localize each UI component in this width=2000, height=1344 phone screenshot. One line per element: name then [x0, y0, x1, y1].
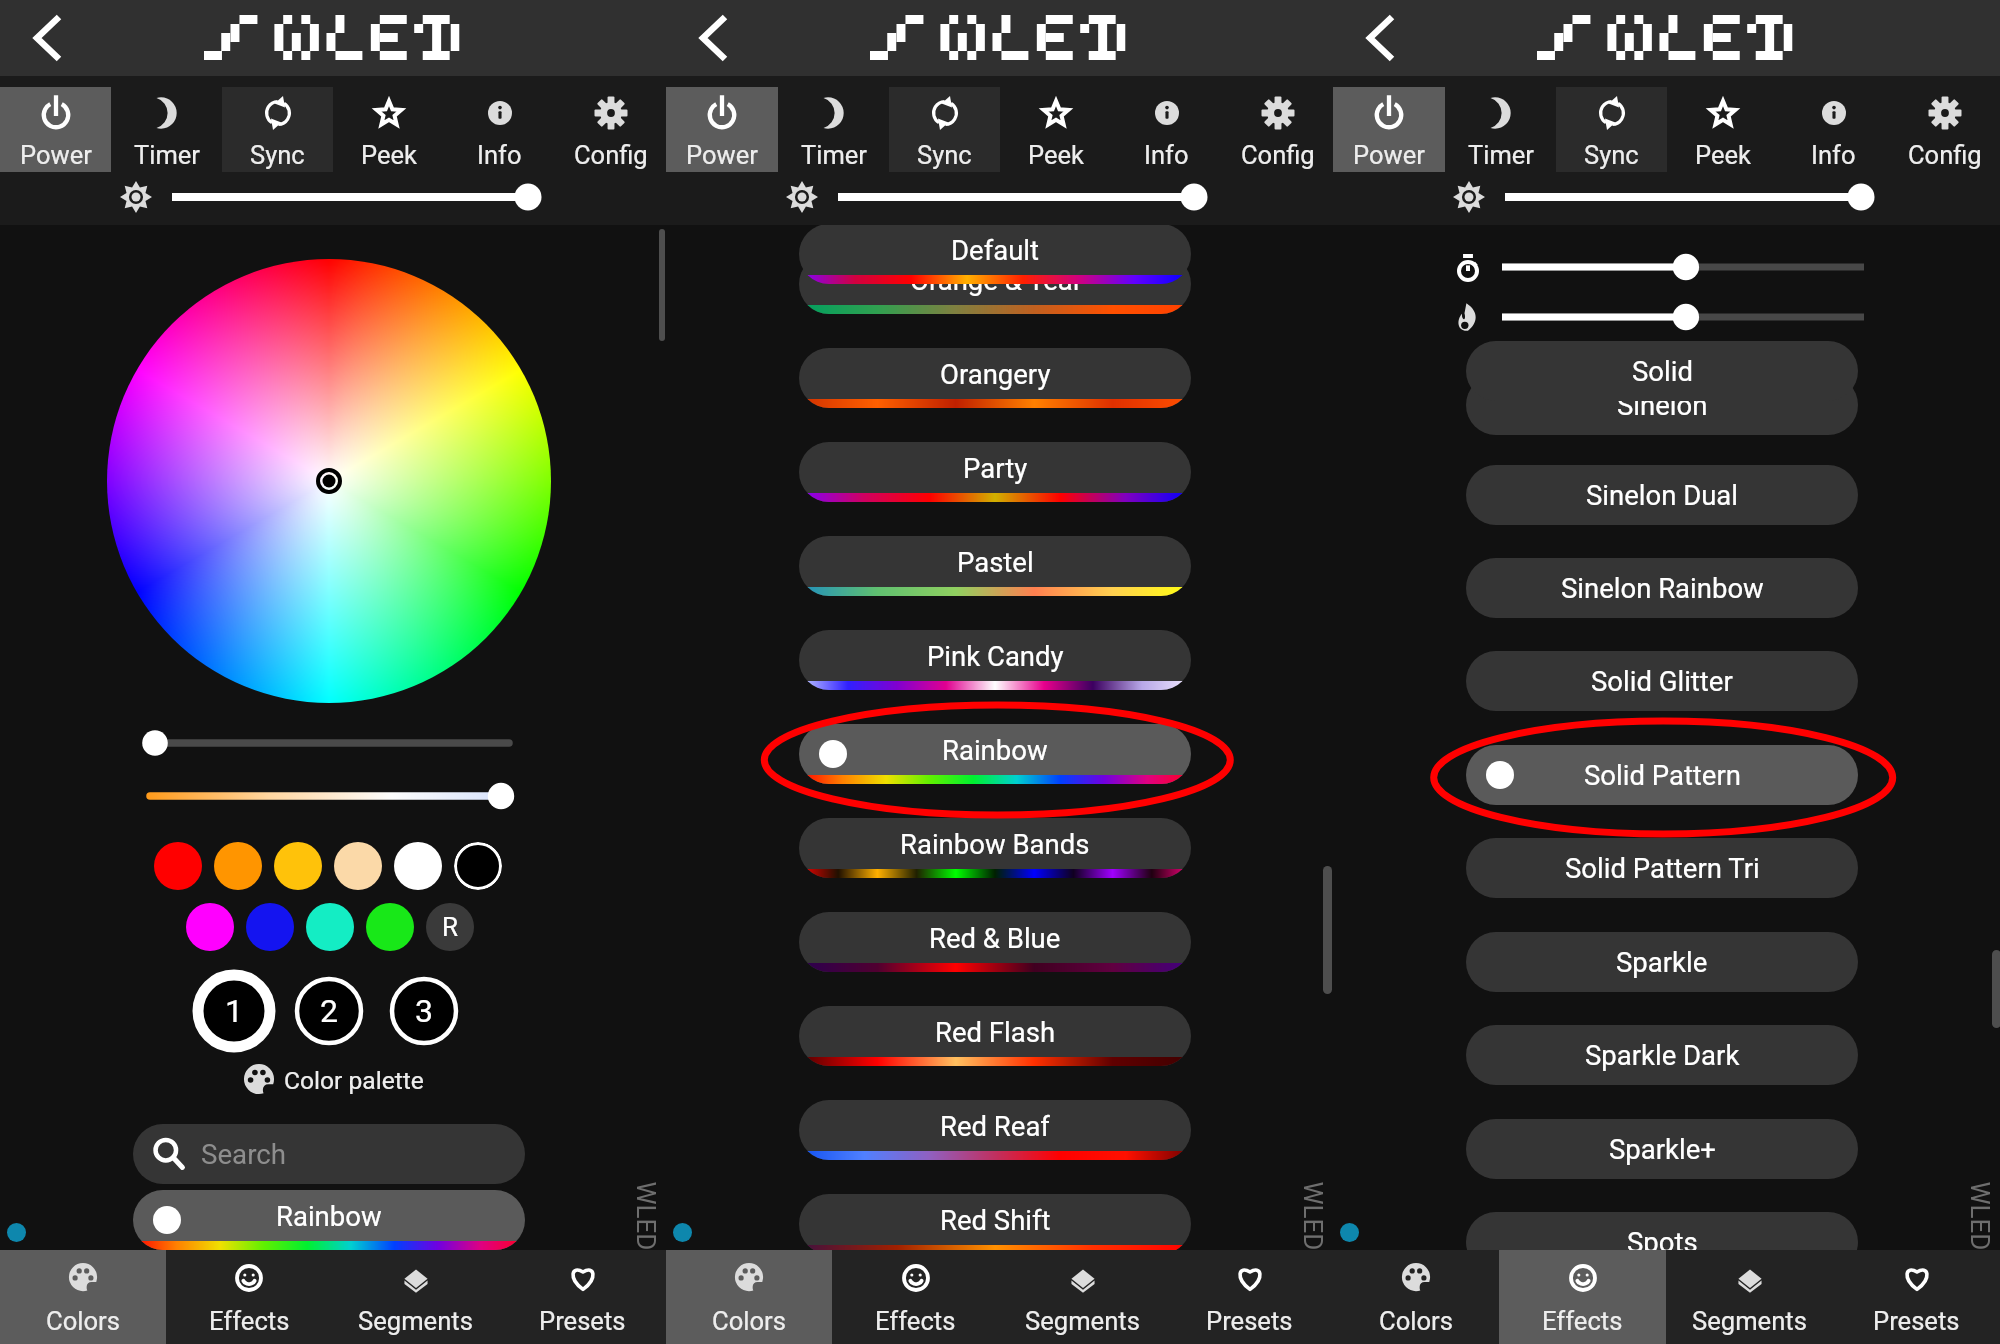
button[interactable]: Search: [133, 1124, 525, 1184]
button[interactable]: Color swatch: [366, 903, 414, 951]
button[interactable]: Power: [666, 87, 778, 172]
button[interactable]: Solid Pattern: [1466, 745, 1858, 805]
button[interactable]: R: [426, 903, 474, 951]
button[interactable]: Red & Blue: [799, 912, 1191, 972]
button[interactable]: Presets: [499, 1250, 666, 1344]
button[interactable]: Red Flash: [799, 1006, 1191, 1066]
button[interactable]: Pink Candy: [799, 630, 1191, 690]
button[interactable]: 1: [191, 968, 277, 1054]
button[interactable]: Colors: [1333, 1250, 1499, 1344]
button[interactable]: Orange & Teal: [799, 254, 1191, 314]
button[interactable]: Color swatch: [306, 903, 354, 951]
button[interactable]: Rainbow: [133, 1190, 525, 1250]
button[interactable]: Brightness slider: [172, 183, 540, 211]
staticText: Info: [477, 140, 522, 170]
button[interactable]: Config: [1222, 87, 1333, 172]
button[interactable]: Presets: [1833, 1250, 2000, 1344]
button[interactable]: Color swatch: [154, 842, 202, 890]
button[interactable]: Back: [686, 10, 742, 66]
staticText: Rainbow: [276, 1200, 382, 1232]
button[interactable]: Effect parameter slider: [1502, 303, 1864, 331]
button[interactable]: Effects: [166, 1250, 332, 1344]
staticText: Solid: [1632, 355, 1693, 387]
button[interactable]: Back: [1353, 10, 1409, 66]
button[interactable]: 3: [381, 968, 467, 1054]
button[interactable]: Segments: [1666, 1250, 1833, 1344]
button[interactable]: Color swatch: [334, 842, 382, 890]
staticText: Pastel: [957, 546, 1034, 578]
button[interactable]: Config: [1889, 87, 2000, 172]
button[interactable]: Solid: [1466, 341, 1858, 401]
button[interactable]: Info: [1778, 87, 1889, 172]
staticText: Segments: [1692, 1306, 1807, 1336]
button[interactable]: Info: [1111, 87, 1222, 172]
staticText: 2: [320, 992, 338, 1030]
staticText: Config: [1908, 140, 1982, 170]
button[interactable]: Segments: [999, 1250, 1166, 1344]
button[interactable]: Sync: [889, 87, 1000, 172]
button[interactable]: Effects: [1499, 1250, 1666, 1344]
button[interactable]: Rainbow: [799, 724, 1191, 784]
staticText: Color palette: [284, 1066, 424, 1095]
staticText: Power: [1353, 140, 1425, 170]
button[interactable]: Effect parameter slider: [1502, 253, 1864, 281]
button[interactable]: Timer: [778, 87, 889, 172]
button[interactable]: Config: [555, 87, 666, 172]
button[interactable]: Colors: [666, 1250, 832, 1344]
button[interactable]: Rainbow Bands: [799, 818, 1191, 878]
staticText: Segments: [1025, 1306, 1140, 1336]
button[interactable]: Red Shift: [799, 1194, 1191, 1250]
staticText: WLED: [1297, 1181, 1327, 1250]
button[interactable]: Timer: [1445, 87, 1556, 172]
button[interactable]: Red Reaf: [799, 1100, 1191, 1160]
staticText: Orange & Teal: [910, 264, 1080, 296]
staticText: Rainbow Bands: [900, 828, 1090, 860]
button[interactable]: Orangery: [799, 348, 1191, 408]
button[interactable]: Sparkle+: [1466, 1119, 1858, 1179]
staticText: Power: [20, 140, 92, 170]
button[interactable]: Peek: [1000, 87, 1111, 172]
button[interactable]: Color swatch: [394, 842, 442, 890]
button[interactable]: Color swatch: [246, 903, 294, 951]
button[interactable]: Brightness slider: [838, 183, 1206, 211]
button[interactable]: Timer: [111, 87, 222, 172]
staticText: Red Reaf: [940, 1110, 1050, 1142]
button[interactable]: Colour temperature slider: [146, 780, 514, 812]
button[interactable]: Sinelon: [1466, 375, 1858, 435]
button[interactable]: Effects: [832, 1250, 999, 1344]
button[interactable]: Default: [799, 225, 1191, 284]
button[interactable]: Sparkle Dark: [1466, 1025, 1858, 1085]
button[interactable]: Color swatch: [214, 842, 262, 890]
button[interactable]: Color swatch: [274, 842, 322, 890]
staticText: Solid Pattern: [1584, 759, 1741, 791]
button[interactable]: Back: [20, 10, 76, 66]
button[interactable]: Spots: [1466, 1212, 1858, 1250]
button[interactable]: Sinelon Rainbow: [1466, 558, 1858, 618]
button[interactable]: White channel slider: [142, 727, 509, 759]
staticText: Config: [574, 140, 648, 170]
button[interactable]: Sync: [1556, 87, 1667, 172]
button[interactable]: Color swatch: [186, 903, 234, 951]
button[interactable]: Peek: [333, 87, 444, 172]
button[interactable]: Sparkle: [1466, 932, 1858, 992]
button[interactable]: Brightness slider: [1505, 183, 1873, 211]
button[interactable]: Power: [1333, 87, 1445, 172]
button[interactable]: Presets: [1166, 1250, 1333, 1344]
button[interactable]: Sync: [222, 87, 333, 172]
button[interactable]: Power: [0, 87, 111, 172]
staticText: Config: [1241, 140, 1315, 170]
button[interactable]: Peek: [1667, 87, 1778, 172]
button[interactable]: Colors: [0, 1250, 166, 1344]
button[interactable]: Party: [799, 442, 1191, 502]
staticText: Timer: [1468, 140, 1534, 170]
button[interactable]: Black swatch: [454, 842, 502, 890]
button[interactable]: Solid Pattern Tri: [1466, 838, 1858, 898]
button[interactable]: Sinelon Dual: [1466, 465, 1858, 525]
button[interactable]: Info: [444, 87, 555, 172]
button[interactable]: 2: [286, 968, 372, 1054]
button[interactable]: Solid Glitter: [1466, 651, 1858, 711]
staticText: WLED: [630, 1181, 660, 1250]
button[interactable]: Pastel: [799, 536, 1191, 596]
button[interactable]: Segments: [332, 1250, 499, 1344]
staticText: Spots: [1627, 1226, 1698, 1250]
